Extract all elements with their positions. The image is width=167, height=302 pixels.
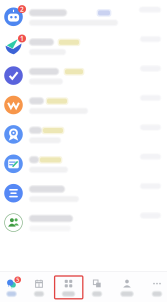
button[interactable]: 工作台 bbox=[55, 277, 81, 299]
staticText: 2 bbox=[20, 5, 24, 14]
staticText: 1 bbox=[20, 34, 24, 43]
staticText: 5 bbox=[16, 276, 19, 283]
button[interactable] bbox=[0, 120, 167, 149]
button[interactable] bbox=[0, 90, 167, 120]
button[interactable]: 1 bbox=[0, 31, 167, 61]
button[interactable]: 更多 bbox=[144, 277, 167, 299]
button[interactable]: 文档 bbox=[84, 277, 110, 299]
button[interactable]: 通讯录 bbox=[114, 277, 140, 299]
button[interactable]: 2 bbox=[0, 2, 167, 31]
button[interactable] bbox=[0, 178, 167, 208]
button[interactable]: 日程 bbox=[26, 277, 52, 299]
button[interactable]: 消息 bbox=[0, 277, 24, 299]
button[interactable] bbox=[0, 61, 167, 90]
button[interactable] bbox=[0, 208, 167, 237]
button[interactable] bbox=[0, 149, 167, 178]
